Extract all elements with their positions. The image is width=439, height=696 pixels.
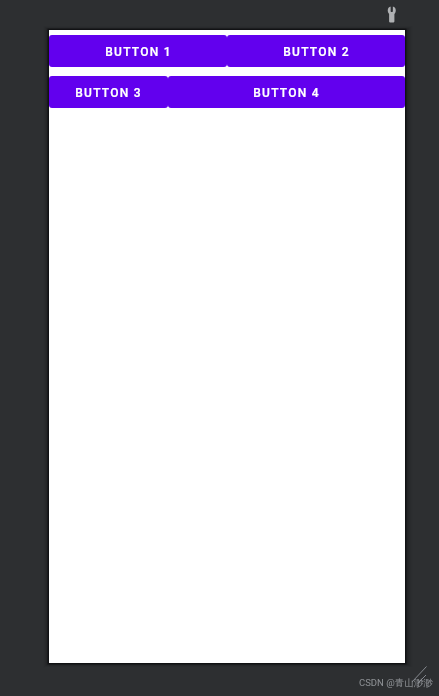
button[interactable]: BUTTON 1 (49, 35, 227, 67)
button[interactable]: BUTTON 4 (168, 76, 405, 108)
staticText: BUTTON 1 (105, 45, 172, 59)
button[interactable]: Design surface settings (382, 4, 402, 24)
staticText: BUTTON 3 (75, 86, 142, 100)
staticText: CSDN @青山渺渺 (359, 677, 433, 689)
staticText: BUTTON 4 (253, 86, 320, 100)
staticText: BUTTON 2 (283, 45, 350, 59)
button[interactable]: BUTTON 3 (49, 76, 168, 108)
button[interactable]: BUTTON 2 (227, 35, 405, 67)
